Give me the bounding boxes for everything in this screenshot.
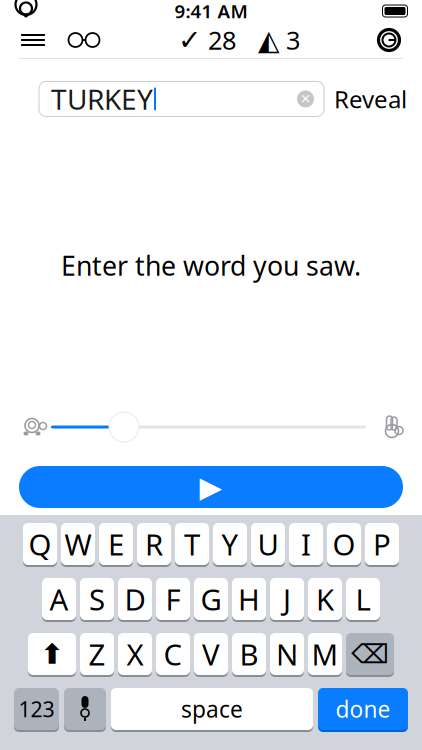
staticText: Enter the word you saw. [61, 248, 361, 283]
staticText: I [301, 524, 311, 563]
staticText: B [239, 634, 258, 673]
button[interactable]: D [118, 578, 152, 622]
staticText: M [311, 634, 338, 673]
staticText: ✓ [178, 24, 201, 56]
button[interactable]: S [80, 578, 114, 622]
button[interactable]: T [175, 523, 209, 567]
button[interactable]: Reveal [326, 77, 415, 121]
button[interactable]: E [99, 523, 133, 567]
button[interactable]: Q [23, 523, 57, 567]
staticText: Q [28, 524, 51, 563]
button[interactable]: J [270, 578, 304, 622]
button[interactable]: F [156, 578, 190, 622]
staticText: K [316, 579, 334, 618]
staticText: ⬆ [40, 638, 63, 670]
staticText: N [276, 634, 298, 673]
button[interactable]: P [365, 523, 399, 567]
staticText: P [373, 524, 391, 563]
staticText: done [335, 694, 390, 724]
staticText: W [64, 524, 91, 563]
button[interactable]: A [42, 578, 76, 622]
button[interactable]: Streak 3 [258, 17, 300, 63]
staticText: V [202, 634, 220, 673]
button[interactable]: L [346, 578, 380, 622]
button[interactable]: Shift [28, 633, 76, 677]
staticText: H [238, 579, 260, 618]
staticText: 9:41 AM [174, 0, 247, 23]
button[interactable]: Reading mode [61, 24, 107, 56]
button[interactable]: U [251, 523, 285, 567]
button[interactable]: V [194, 633, 228, 677]
button[interactable]: X [118, 633, 152, 677]
staticText: C [163, 634, 182, 673]
button[interactable]: Settings [371, 22, 407, 58]
staticText: ◭ [258, 24, 280, 56]
button[interactable]: Y [213, 523, 247, 567]
button[interactable]: Dictation [64, 688, 106, 732]
staticText: R [145, 524, 163, 563]
staticText: space [181, 694, 243, 724]
staticText: O [332, 524, 355, 563]
staticText: D [124, 579, 145, 618]
staticText: TURKEY [51, 80, 153, 117]
button[interactable]: Delete [346, 633, 394, 677]
staticText: ▶ [199, 470, 222, 504]
button[interactable]: R [137, 523, 171, 567]
button[interactable]: Menu [13, 24, 53, 56]
staticText: F [165, 579, 180, 618]
staticText: T [184, 524, 200, 563]
staticText: ✕ [300, 91, 311, 106]
staticText: 28 [208, 23, 236, 57]
staticText: Reveal [334, 83, 407, 115]
button[interactable]: 123 [14, 688, 59, 732]
button[interactable]: H [232, 578, 266, 622]
button[interactable]: N [270, 633, 304, 677]
button[interactable]: Speed slider [51, 411, 366, 443]
staticText: S [89, 579, 105, 618]
button[interactable]: Correct count 28 [178, 17, 236, 63]
button[interactable]: O [327, 523, 361, 567]
staticText: 3 [286, 23, 300, 57]
staticText: J [283, 579, 291, 618]
staticText: L [355, 579, 370, 618]
staticText: G [200, 579, 221, 618]
staticText: E [108, 524, 124, 563]
button[interactable]: space [111, 688, 313, 732]
staticText: Z [88, 634, 105, 673]
button[interactable]: Word entry field [39, 81, 324, 116]
staticText: ⌫ [351, 639, 389, 669]
button[interactable]: B [232, 633, 266, 677]
button[interactable]: Play word [19, 466, 403, 508]
staticText: U [257, 524, 278, 563]
staticText: Y [221, 524, 238, 563]
button[interactable]: W [61, 523, 95, 567]
staticText: A [49, 579, 68, 618]
button[interactable]: G [194, 578, 228, 622]
button[interactable]: Z [80, 633, 114, 677]
button[interactable]: M [308, 633, 342, 677]
staticText: 123 [18, 695, 54, 723]
button[interactable]: K [308, 578, 342, 622]
button[interactable]: I [289, 523, 323, 567]
staticText: X [126, 634, 143, 673]
button[interactable]: done [318, 688, 408, 732]
button[interactable]: C [156, 633, 190, 677]
